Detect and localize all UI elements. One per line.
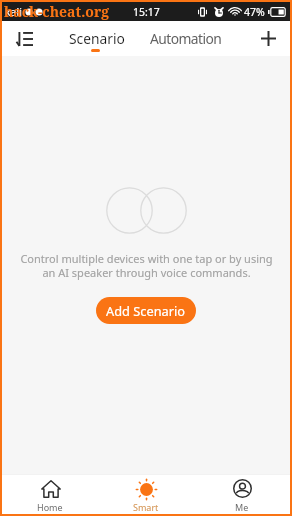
staticText: Scenario — [69, 29, 125, 48]
staticText: hack-cheat.org — [4, 2, 110, 21]
staticText: Smart — [133, 501, 159, 513]
button[interactable]: Scenario — [69, 21, 125, 56]
button[interactable]: Add Scenario — [96, 297, 196, 324]
staticText: Add Scenario — [106, 302, 186, 319]
button[interactable]: Smart — [98, 475, 194, 514]
button[interactable]: Sort — [2, 21, 47, 56]
staticText: Automation — [150, 29, 222, 48]
staticText: 15:17 — [133, 5, 160, 19]
staticText: Me — [235, 501, 249, 513]
staticText: Control multiple devices with one tap or… — [20, 251, 273, 280]
button[interactable]: Add — [247, 21, 290, 56]
staticText: Home — [37, 501, 63, 513]
button[interactable]: Me — [194, 475, 290, 514]
staticText: kali — [5, 5, 22, 19]
staticText: 47% — [244, 5, 265, 19]
button[interactable]: Home — [2, 475, 98, 514]
button[interactable]: Automation — [150, 21, 222, 56]
